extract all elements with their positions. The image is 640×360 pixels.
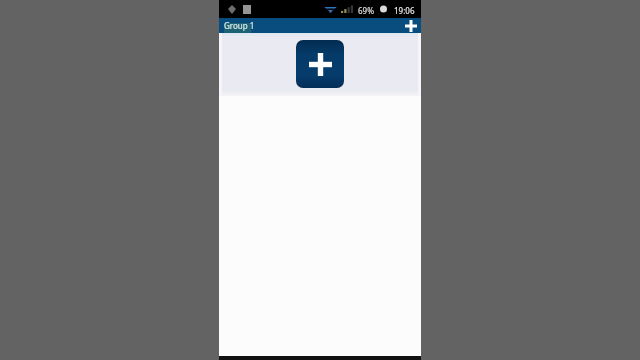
button[interactable]: Add group [403,18,419,33]
staticText: 69% [358,5,374,16]
button[interactable]: Add member [296,40,344,88]
staticText: Group 1 [224,20,255,31]
staticText: 19:06 [394,5,415,16]
button[interactable]: Group 1 [223,18,259,33]
